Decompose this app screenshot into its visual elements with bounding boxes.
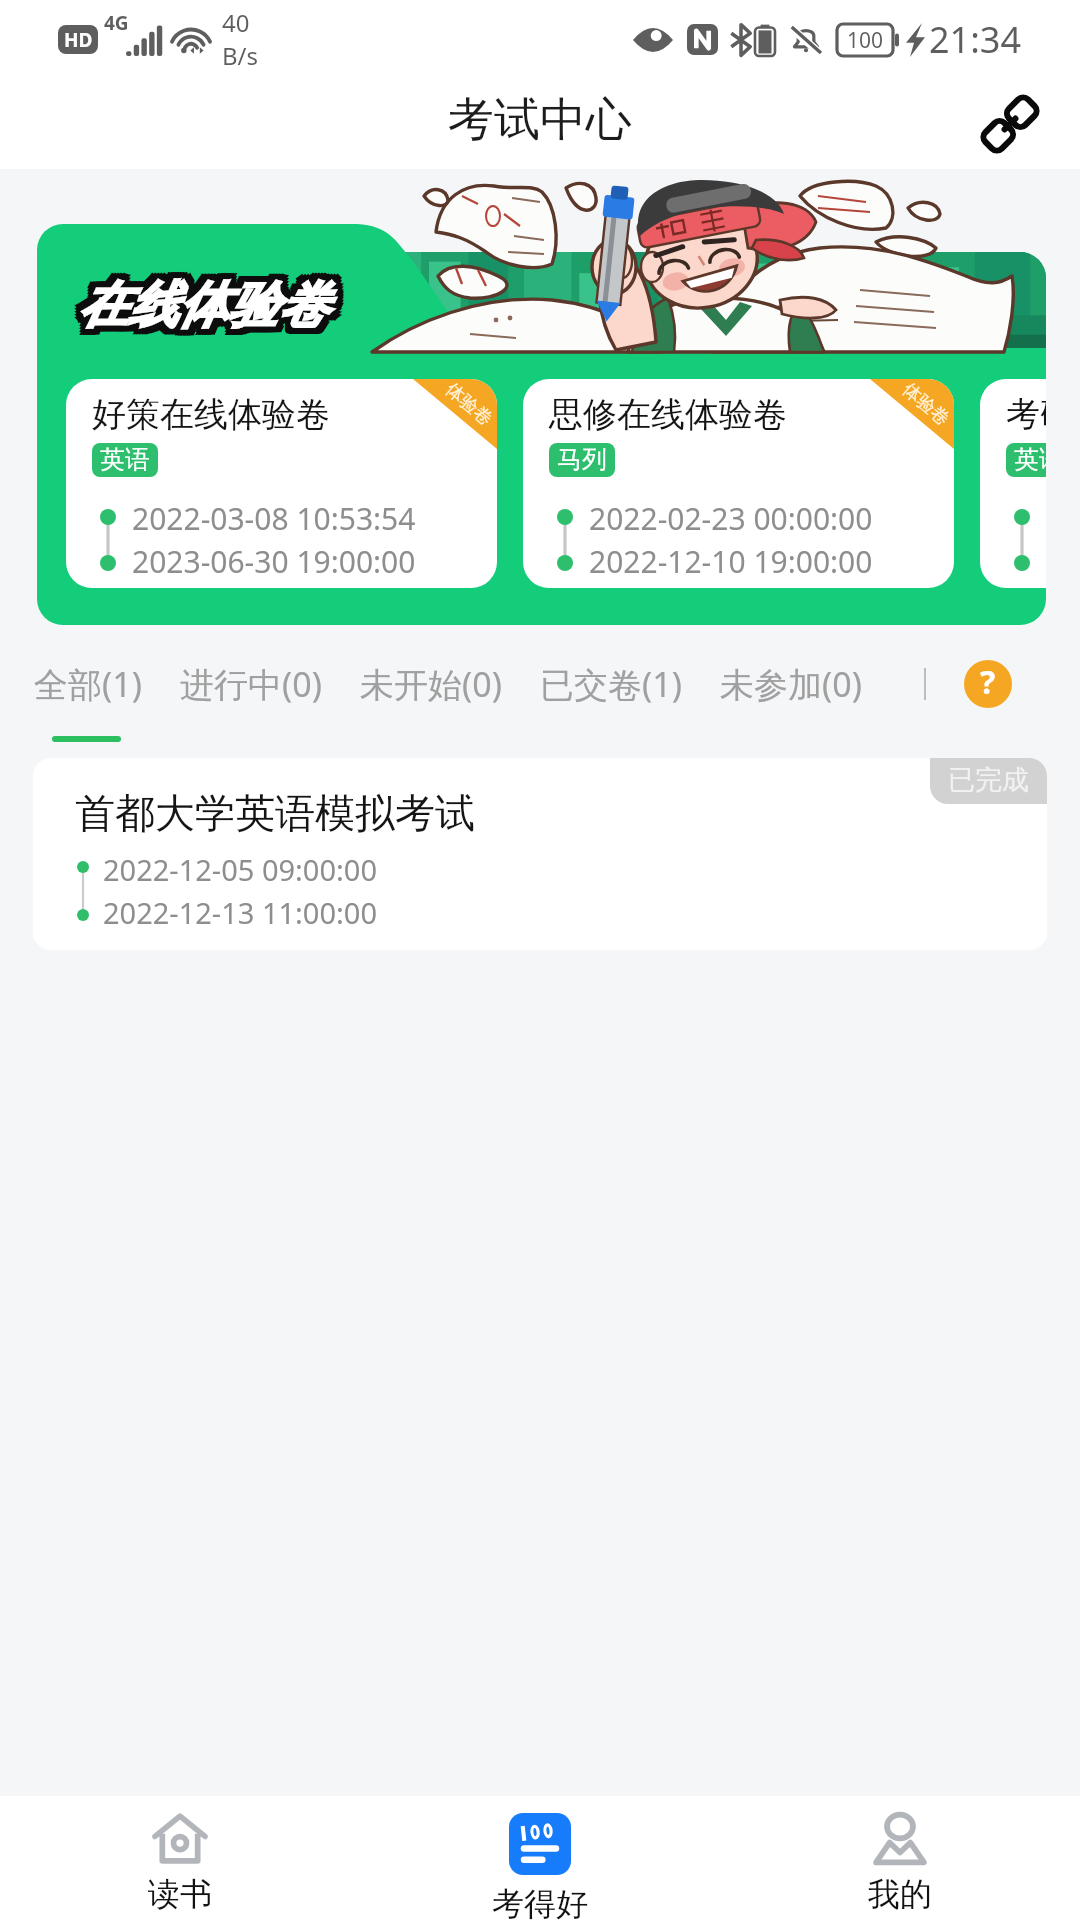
staticText: 未开始(0) [360,661,502,707]
staticText: 全部(1) [34,661,142,707]
button[interactable]: 读书 [0,1796,360,1920]
staticText: B/s [222,39,259,72]
staticText: 英语 [100,444,150,475]
staticText: 40 [222,6,250,39]
staticText: 100 [847,26,884,55]
staticText: 首都大学英语模拟考试 [75,788,475,838]
staticText: 读书 [148,1874,212,1914]
staticText: 在线体验卷 [72,271,322,334]
button[interactable]: 进行中(0) [180,661,322,707]
button[interactable]: Share link [970,84,1050,164]
staticText: 2022-12-10 19:00:00 [589,541,873,582]
staticText: ? [980,660,996,704]
staticText: 英语 [1014,444,1046,475]
button[interactable]: 体验卷 [66,379,497,588]
staticText: 考试中心 [448,91,632,149]
staticText: 在线体验卷 [84,271,334,334]
button[interactable]: 考得好 [360,1796,720,1920]
staticText: 4G [104,10,129,36]
staticText: 在线体验卷 [78,280,328,343]
button[interactable]: 我的 [720,1796,1080,1920]
staticText: 已完成 [948,763,1029,797]
button[interactable]: 全部(1) [34,661,142,707]
staticText: 考得好 [492,1884,588,1920]
button[interactable]: Help [964,660,1012,708]
staticText: HD [64,27,93,53]
staticText: 2023-06-30 19:00:00 [132,541,416,582]
staticText: 在线体验卷 [78,268,328,331]
staticText: 在线体验卷 [84,277,334,340]
staticText: 进行中(0) [180,661,322,707]
staticText: 思修在线体验卷 [549,393,787,436]
button[interactable]: 体验卷 [980,379,1046,588]
staticText: 21:34 [929,15,1022,64]
staticText: 体验卷 [898,379,954,431]
staticText: 在线体验卷 [72,268,322,331]
staticText: 考研在线体验卷 [1006,393,1046,436]
staticText: 在线体验卷 [84,280,334,343]
staticText: 马列 [557,444,607,475]
staticText: 在线体验卷 [81,280,331,343]
staticText: 体验卷 [441,379,497,431]
staticText: 在线体验卷 [84,268,334,331]
staticText: 在线体验卷 [75,280,325,343]
button[interactable]: 未开始(0) [360,661,502,707]
staticText: 2022-03-08 10:53:54 [132,498,416,539]
staticText: 2022-02-23 00:00:00 [589,498,873,539]
staticText: 2022-12-13 11:00:00 [103,893,377,932]
button[interactable]: 体验卷 [523,379,954,588]
staticText: 已交卷(1) [540,661,682,707]
staticText: 在线体验卷 [72,274,322,337]
staticText: 我的 [868,1874,932,1914]
staticText: 好策在线体验卷 [92,393,330,436]
button[interactable]: 已完成 [33,758,1047,950]
staticText: 在线体验卷 [72,280,322,343]
staticText: 2022-12-05 09:00:00 [103,850,377,889]
button[interactable]: 未参加(0) [720,661,862,707]
staticText: 在线体验卷 [75,268,325,331]
button[interactable]: 已交卷(1) [540,661,682,707]
staticText: 在线体验卷 [81,268,331,331]
staticText: 在线体验卷 [84,274,334,337]
staticText: 未参加(0) [720,661,862,707]
staticText: 在线体验卷 [72,277,322,340]
staticText: 在线体验卷 [78,274,328,337]
